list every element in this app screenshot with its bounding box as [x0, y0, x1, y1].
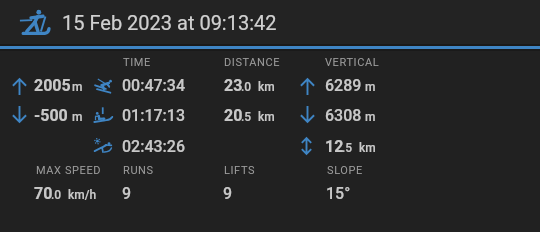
staticText: km/h — [68, 188, 97, 202]
other: Ascent — [12, 79, 27, 95]
button[interactable]: Cross-country skiing activity — [0, 0, 540, 45]
staticText: m — [365, 110, 376, 124]
other: Vertical down — [300, 106, 315, 122]
staticText: 00:47:34 — [122, 76, 186, 95]
staticText: 9 — [122, 184, 132, 203]
staticText: 02:43:26 — [122, 137, 186, 156]
staticText: RUNS — [123, 164, 154, 177]
staticText: 15 Feb 2023 at 09:13:42 — [62, 11, 277, 34]
other: Cross-country skiing activity — [19, 10, 49, 36]
other: Vertical up — [300, 79, 315, 95]
staticText: DISTANCE — [224, 56, 281, 69]
staticText: .0 — [51, 188, 62, 202]
staticText: km — [258, 110, 275, 124]
staticText: .5 — [241, 110, 252, 124]
staticText: 6289 — [325, 76, 362, 95]
other: Skiing time — [94, 77, 113, 93]
staticText: -500 — [34, 106, 68, 125]
staticText: TIME — [123, 56, 151, 69]
staticText: SLOPE — [327, 164, 363, 177]
staticText: 20 — [224, 106, 243, 125]
staticText: m — [72, 80, 83, 94]
staticText: m — [72, 110, 83, 124]
staticText: 01:17:13 — [122, 106, 186, 125]
staticText: 15° — [326, 184, 351, 203]
staticText: 23 — [224, 76, 243, 95]
other: Total vertical — [302, 138, 311, 154]
other: Descent — [12, 106, 27, 122]
staticText: m — [365, 80, 376, 94]
staticText: km — [359, 141, 376, 155]
staticText: VERTICAL — [325, 56, 380, 69]
other: Lift time — [94, 107, 113, 123]
staticText: .0 — [241, 80, 252, 94]
staticText: 2005 — [34, 76, 71, 95]
staticText: 9 — [223, 184, 233, 203]
staticText: .5 — [342, 141, 353, 155]
staticText: 70 — [34, 184, 53, 203]
staticText: LIFTS — [224, 164, 256, 177]
staticText: 6308 — [325, 106, 362, 125]
staticText: 12 — [325, 137, 344, 156]
staticText: km — [258, 80, 275, 94]
other: Total time — [93, 138, 113, 154]
staticText: MAX SPEED — [36, 164, 102, 177]
